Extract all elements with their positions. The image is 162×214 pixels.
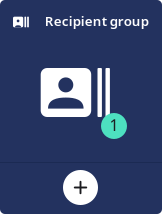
staticText: 1 bbox=[109, 114, 118, 136]
staticText: Recipient group bbox=[45, 12, 149, 30]
button[interactable]: Add recipient bbox=[57, 164, 103, 210]
button[interactable]: Recipient group bbox=[0, 0, 162, 44]
